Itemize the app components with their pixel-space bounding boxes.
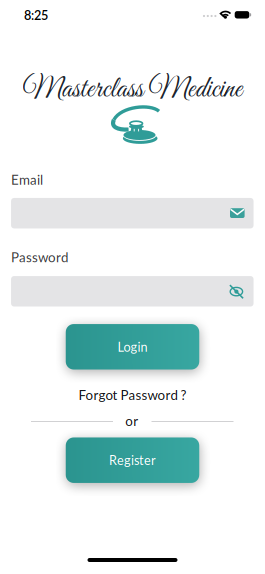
button[interactable] [11,276,254,307]
staticText: Forgot Password ? [78,387,186,403]
button[interactable]: Forgot Password ? [78,387,186,403]
button[interactable] [11,198,254,228]
button[interactable] [228,283,245,300]
staticText: or [125,413,138,429]
staticText: Login [117,339,147,354]
staticText: Masterclass Medicine [22,72,242,108]
staticText: Email [11,171,43,187]
staticText: Register [109,453,156,468]
button[interactable]: Login [66,324,199,370]
button[interactable]: Register [66,437,199,483]
button[interactable] [229,206,245,220]
staticText: 8:25 [24,7,48,23]
staticText: Password [11,249,68,265]
